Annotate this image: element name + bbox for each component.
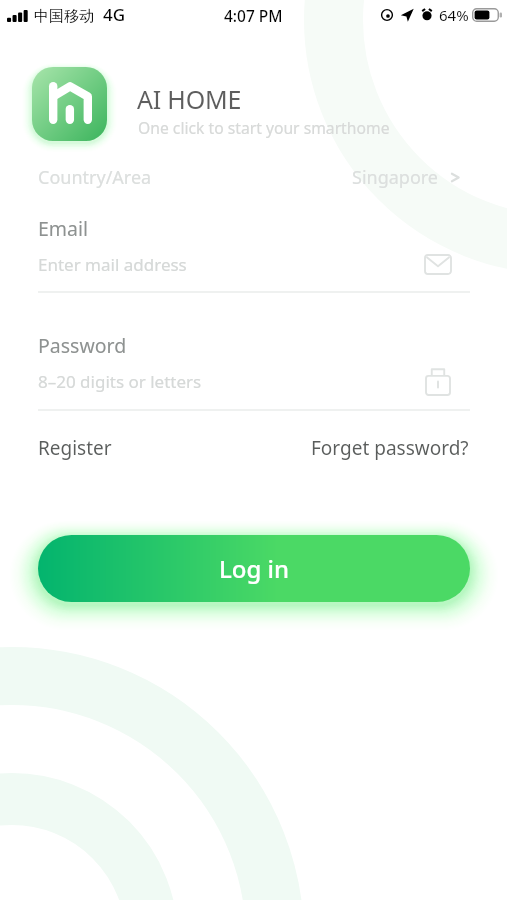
staticText: Forget password?: [311, 435, 469, 461]
staticText: 64%: [439, 5, 469, 25]
staticText: 4G: [103, 3, 126, 26]
button[interactable]: Email: [419, 248, 457, 280]
staticText: Log in: [219, 552, 290, 585]
staticText: Singapore: [352, 165, 439, 190]
button[interactable]: Forget password?: [311, 435, 469, 461]
staticText: Country/Area: [38, 165, 152, 190]
staticText: 4:07 PM: [224, 5, 283, 26]
staticText: Enter mail address: [38, 253, 187, 276]
button[interactable]: Log in: [38, 535, 470, 602]
staticText: Email: [38, 215, 89, 242]
button[interactable]: Country/Area: [0, 162, 507, 192]
staticText: One click to start your smarthome: [138, 117, 390, 138]
button[interactable]: Show password: [419, 365, 457, 397]
staticText: 中国移动: [34, 7, 94, 26]
staticText: 8–20 digits or letters: [38, 370, 202, 393]
staticText: AI HOME: [137, 82, 242, 116]
staticText: Password: [38, 332, 127, 359]
button[interactable]: Register: [38, 435, 112, 461]
staticText: Register: [38, 435, 112, 461]
